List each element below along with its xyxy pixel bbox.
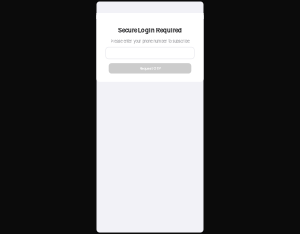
staticText: Request OTP bbox=[139, 66, 160, 71]
button[interactable]: Phone number bbox=[106, 47, 194, 59]
staticText: Please enter your phone number to subscr… bbox=[110, 39, 189, 44]
button[interactable]: Request OTP bbox=[109, 63, 191, 74]
staticText: Secure Login Required bbox=[118, 27, 182, 34]
